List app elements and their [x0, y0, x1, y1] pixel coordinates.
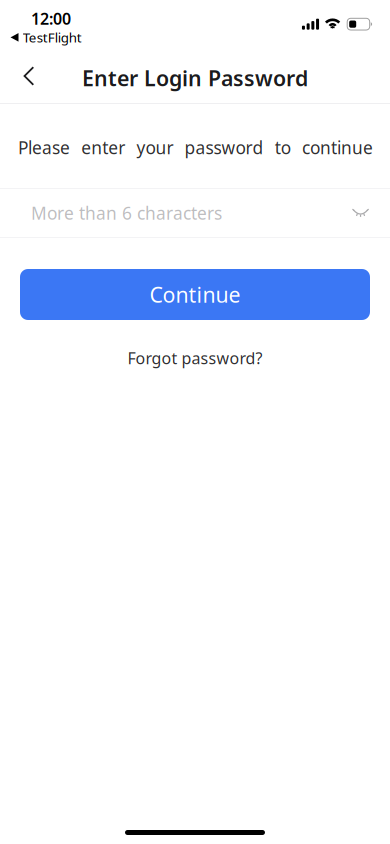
button[interactable]: Forgot password? — [115, 344, 275, 372]
staticText: password — [185, 136, 264, 159]
staticText: Continue — [149, 280, 240, 309]
button[interactable]: Back — [7, 56, 51, 100]
staticText: your — [136, 136, 173, 159]
staticText: continue — [302, 136, 373, 159]
staticText: 12:00 — [31, 8, 71, 29]
staticText: Forgot password? — [127, 347, 262, 369]
staticText: Enter Login Password — [82, 64, 308, 92]
staticText: to — [275, 136, 291, 159]
button[interactable]: Continue — [20, 269, 370, 320]
staticText: enter — [81, 136, 125, 159]
staticText: Please — [18, 136, 70, 159]
button[interactable]: More than 6 characters — [0, 188, 390, 238]
staticText: TestFlight — [23, 28, 82, 46]
staticText: More than 6 characters — [31, 201, 222, 224]
